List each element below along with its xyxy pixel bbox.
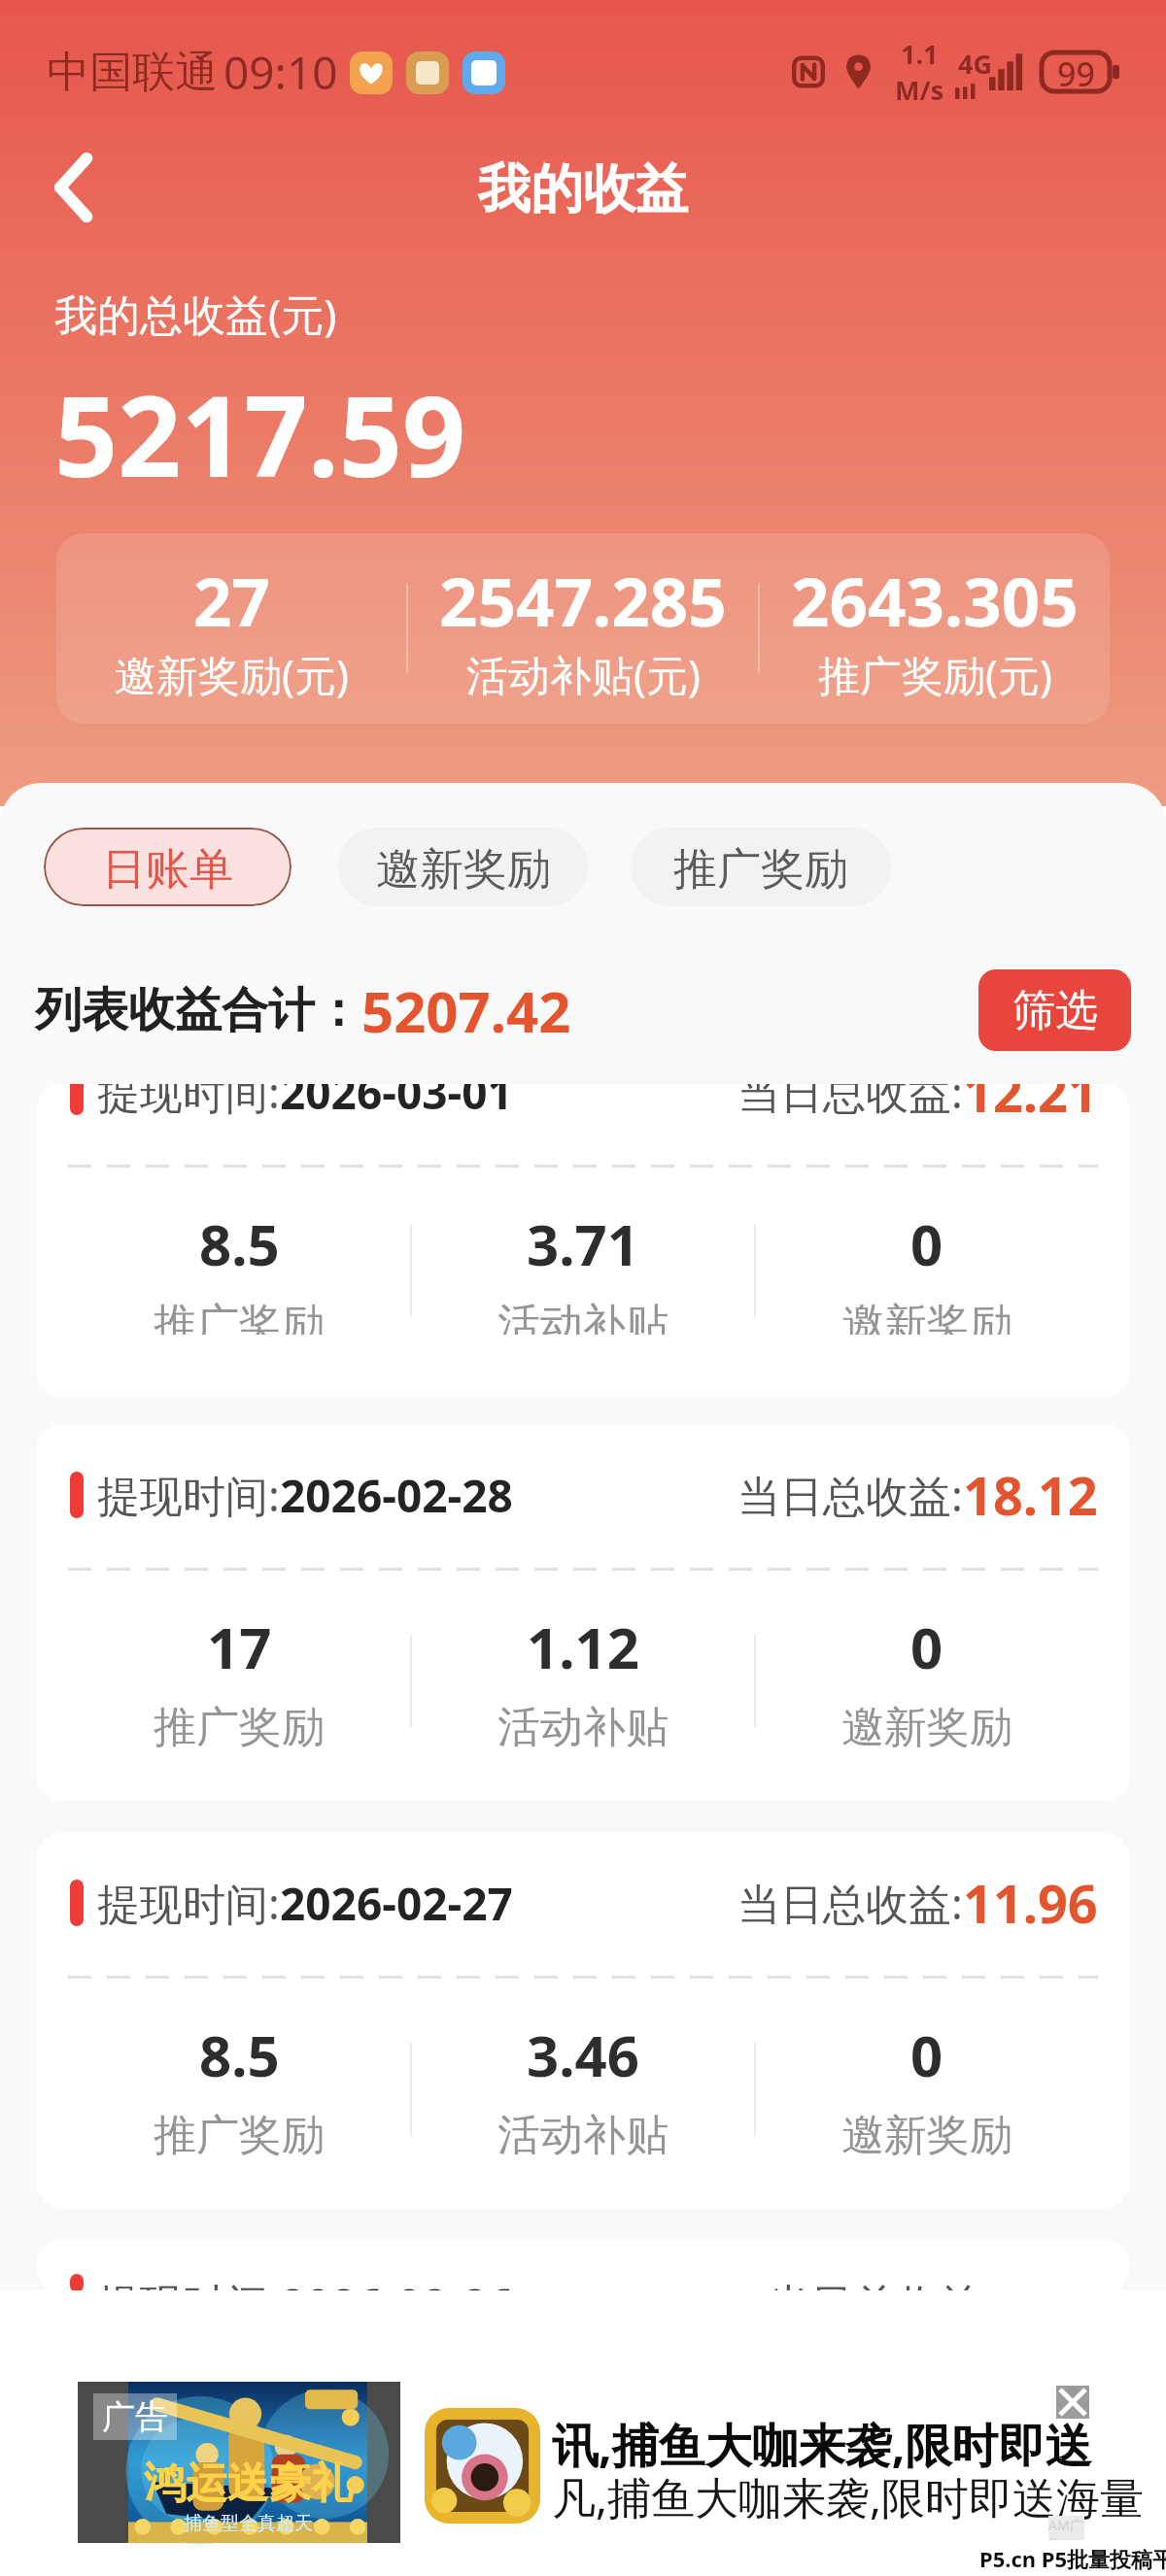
staticText: 当日总收益: — [737, 1874, 963, 1932]
staticText: 捕鱼型全真超天 — [184, 2512, 313, 2535]
staticText: 27 — [193, 555, 270, 646]
staticText: 我的收益 — [478, 156, 688, 222]
staticText: 中国联通 — [47, 46, 218, 99]
staticText: 2026-02-26 — [280, 2274, 513, 2290]
staticText: 邀新奖励 — [841, 1298, 1012, 1335]
staticText: 0 — [910, 2017, 943, 2093]
staticText: 活动补贴 — [497, 2109, 669, 2162]
staticText: 09:10 — [223, 42, 338, 103]
staticText: 列表收益合计： — [35, 981, 361, 1039]
staticText: 17 — [207, 1609, 272, 1685]
staticText: 邀新奖励 — [841, 1701, 1012, 1754]
staticText: 邀新奖励 — [841, 2109, 1012, 2162]
staticText: 广告 — [102, 2396, 168, 2438]
staticText: 2547.285 — [439, 555, 727, 646]
staticText: 推广奖励 — [154, 1701, 325, 1754]
staticText: 活动补贴 — [497, 1701, 669, 1754]
staticText: 99 — [1057, 51, 1095, 92]
staticText: 1.12 — [527, 1609, 639, 1685]
staticText: 4G — [958, 46, 992, 82]
staticText: 提现时间: — [97, 1466, 280, 1524]
button[interactable]: 鸿运送豪礼 — [78, 2382, 400, 2543]
staticText: 推广奖励 — [154, 2109, 325, 2162]
button[interactable]: Back — [17, 130, 131, 245]
staticText: 邀新奖励(元) — [115, 646, 349, 703]
staticText: 提现时间: — [97, 2274, 280, 2290]
staticText: 活动补贴(元) — [466, 646, 701, 703]
button[interactable]: 提现时间: — [37, 1425, 1129, 1800]
staticText: 12.21 — [963, 1084, 1098, 1128]
staticText: 8.5 — [199, 1205, 280, 1282]
staticText: 当日总收益: — [737, 1084, 963, 1121]
staticText: 讯,捕鱼大咖来袭,限时即送 — [552, 2413, 1092, 2477]
button[interactable]: 筛选 — [978, 969, 1131, 1051]
button[interactable]: 提现时间: — [37, 1833, 1129, 2208]
button[interactable]: 推广奖励 — [631, 828, 891, 906]
button[interactable]: 提现时间: — [37, 1084, 1129, 1397]
staticText: 8.5 — [199, 2017, 280, 2093]
staticText: 我的总收益(元) — [54, 285, 337, 343]
staticText: 凡,捕鱼大咖来袭,限时即送海量 — [552, 2467, 1145, 2526]
button[interactable]: 日账单 — [44, 828, 291, 906]
staticText: 3.71 — [527, 1205, 639, 1282]
staticText: 2026-02-28 — [280, 1465, 513, 1526]
staticText: 当日总收益: — [737, 1466, 963, 1524]
button[interactable]: 邀新奖励 — [338, 828, 588, 906]
staticText: 当日总收益: — [768, 2274, 993, 2290]
button[interactable] — [425, 2408, 540, 2524]
staticText: 0 — [910, 1609, 943, 1685]
staticText: 推广奖励(元) — [818, 646, 1052, 703]
staticText: 日账单 — [102, 842, 233, 898]
button[interactable]: Close ad — [1056, 2386, 1089, 2419]
staticText: 0 — [910, 1205, 943, 1282]
staticText: 5217.59 — [54, 358, 466, 509]
button[interactable]: 提现时间: — [37, 2240, 1129, 2290]
staticText: 推广奖励 — [673, 842, 848, 898]
staticText: 提现时间: — [97, 1084, 280, 1121]
staticText: 11.96 — [963, 1867, 1098, 1939]
staticText: P5.cn P5批量投稿平台 — [979, 2544, 1166, 2573]
staticText: 推广奖励 — [154, 1298, 325, 1335]
staticText: 3.46 — [527, 2017, 639, 2093]
staticText: 鸿运送豪礼 — [144, 2457, 353, 2510]
staticText: 活动补贴 — [497, 1298, 669, 1335]
staticText: 2026-02-27 — [280, 1873, 513, 1934]
staticText: 2643.305 — [791, 555, 1079, 646]
staticText: 18.12 — [963, 1459, 1098, 1531]
staticText: 5207.42 — [361, 972, 571, 1049]
staticText: M/s — [895, 72, 944, 108]
staticText: 2026-03-01 — [280, 1084, 513, 1123]
staticText: 提现时间: — [97, 1874, 280, 1932]
staticText: 筛选 — [1012, 984, 1098, 1037]
staticText: AM广告 — [1048, 2516, 1084, 2540]
staticText: 邀新奖励 — [376, 842, 551, 898]
staticText: 1.1 — [901, 36, 939, 72]
